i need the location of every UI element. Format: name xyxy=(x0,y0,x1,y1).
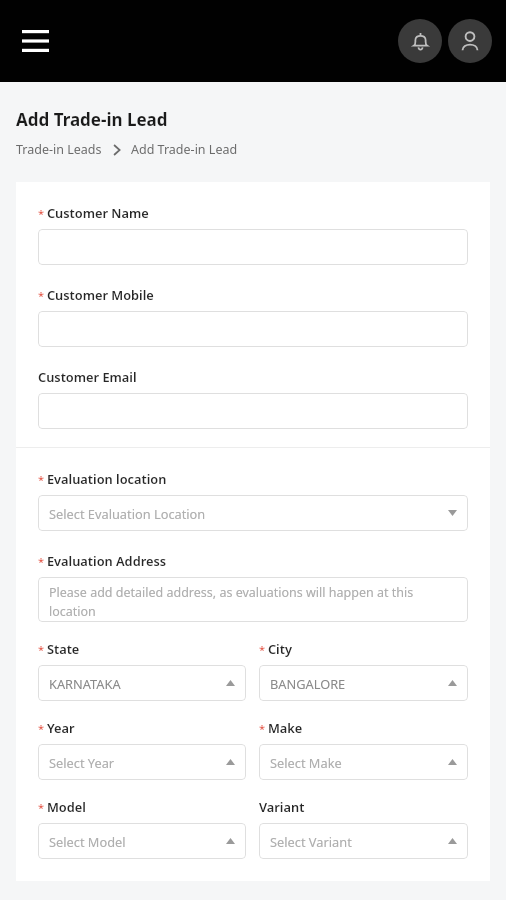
staticText: * Evaluation Address xyxy=(38,552,167,569)
button[interactable]: Select Make xyxy=(259,744,468,780)
button[interactable]: KARNATAKA xyxy=(38,665,246,701)
staticText: * State xyxy=(38,640,80,657)
staticText: * City xyxy=(259,640,292,657)
staticText: Customer Email xyxy=(38,368,137,385)
staticText: Add Trade-in Lead xyxy=(131,141,238,158)
button[interactable] xyxy=(38,311,468,347)
staticText: * Year xyxy=(38,719,75,736)
button[interactable] xyxy=(38,229,468,265)
staticText: KARNATAKA xyxy=(49,675,121,692)
button[interactable]: Notifications xyxy=(398,19,442,63)
button[interactable] xyxy=(38,393,468,429)
button[interactable]: Profile xyxy=(448,19,492,63)
staticText: Please add detailed address, as evaluati… xyxy=(49,584,460,620)
button[interactable]: Select Model xyxy=(38,823,246,859)
button[interactable]: Select Variant xyxy=(259,823,468,859)
button[interactable]: Select Evaluation Location xyxy=(38,495,468,531)
button[interactable]: Select Year xyxy=(38,744,246,780)
staticText: Select Year xyxy=(49,754,115,771)
staticText: * Customer Mobile xyxy=(38,286,154,303)
button[interactable]: BANGALORE xyxy=(259,665,468,701)
staticText: Select Make xyxy=(270,754,342,771)
button[interactable]: Trade-in Leads xyxy=(16,141,102,158)
button[interactable]: Please add detailed address, as evaluati… xyxy=(38,577,468,622)
staticText: * Evaluation location xyxy=(38,470,167,487)
staticText: Select Evaluation Location xyxy=(49,505,206,522)
staticText: * Customer Name xyxy=(38,204,149,221)
staticText: Add Trade-in Lead xyxy=(16,108,168,131)
staticText: Select Model xyxy=(49,833,126,850)
staticText: Select Variant xyxy=(270,833,352,850)
button[interactable]: Open navigation menu xyxy=(14,20,56,62)
staticText: BANGALORE xyxy=(270,675,346,692)
staticText: * Make xyxy=(259,719,303,736)
staticText: Variant xyxy=(259,798,305,815)
staticText: * Model xyxy=(38,798,86,815)
